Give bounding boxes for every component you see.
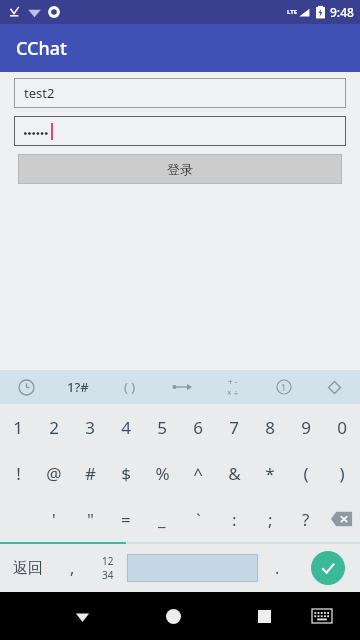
staticText: 8	[265, 416, 275, 439]
button[interactable]: Switch keyboard	[298, 592, 346, 640]
button[interactable]: '	[36, 496, 72, 542]
staticText: 3	[85, 416, 95, 439]
staticText: × ÷	[227, 387, 239, 398]
button[interactable]: 0	[324, 404, 360, 450]
staticText: *	[265, 462, 275, 485]
staticText: 6	[193, 416, 203, 439]
button[interactable]: 3	[72, 404, 108, 450]
staticText: 34	[102, 568, 114, 582]
staticText: ^	[193, 462, 203, 485]
staticText: @	[46, 462, 62, 485]
staticText: '	[52, 508, 56, 531]
button[interactable]: !	[0, 450, 36, 496]
staticText: 0	[337, 416, 347, 439]
staticText: 1	[281, 381, 287, 393]
staticText: CChat	[16, 36, 67, 61]
button[interactable]: ,	[55, 544, 89, 592]
staticText: &	[228, 462, 241, 485]
button[interactable]: Recent	[0, 370, 52, 404]
staticText: 7	[229, 416, 239, 439]
button[interactable]: #	[72, 450, 108, 496]
staticText: + -	[228, 376, 238, 387]
button[interactable]: _	[144, 496, 180, 542]
staticText: #	[85, 462, 96, 485]
staticText: ,	[70, 557, 75, 579]
staticText: 12	[102, 554, 114, 568]
button[interactable]: :	[216, 496, 252, 542]
button[interactable]: 12	[89, 544, 127, 592]
button[interactable]: Shape symbols	[309, 370, 360, 404]
staticText: 1	[13, 416, 23, 439]
button[interactable]: .	[258, 544, 296, 592]
button[interactable]	[14, 116, 346, 146]
staticText: 9:48	[330, 4, 354, 20]
staticText: .	[275, 557, 280, 579]
button[interactable]: 登录	[18, 154, 342, 184]
button[interactable]: (	[288, 450, 324, 496]
button[interactable]: 1?#	[52, 370, 104, 404]
staticText: 返回	[13, 559, 43, 578]
button[interactable]: "	[72, 496, 108, 542]
button[interactable]: $	[108, 450, 144, 496]
button[interactable]: Recents	[240, 592, 288, 640]
button[interactable]: )	[324, 450, 360, 496]
button[interactable]: 返回	[0, 544, 55, 592]
staticText: 4	[121, 416, 131, 439]
staticText: LTE	[287, 8, 298, 16]
button[interactable]: ;	[252, 496, 288, 542]
staticText: %	[155, 462, 170, 485]
button[interactable]: 8	[252, 404, 288, 450]
staticText: "	[87, 508, 94, 531]
staticText: (	[303, 462, 309, 485]
staticText: ;	[268, 508, 273, 531]
staticText: _	[158, 508, 166, 531]
button[interactable]: Back	[58, 592, 106, 640]
button[interactable]: test2	[14, 78, 346, 108]
staticText: =	[121, 508, 131, 531]
staticText: `	[196, 508, 201, 531]
staticText: ?	[302, 508, 310, 531]
button[interactable]: ( )	[104, 370, 156, 404]
button[interactable]: =	[108, 496, 144, 542]
staticText: ( )	[124, 378, 136, 396]
button[interactable]: 5	[144, 404, 180, 450]
button[interactable]: %	[144, 450, 180, 496]
button[interactable]: ?	[288, 496, 324, 542]
staticText: 2	[49, 416, 59, 439]
button[interactable]: Backspace	[324, 496, 360, 542]
button[interactable]: + -	[207, 370, 258, 404]
button[interactable]: 1	[0, 404, 36, 450]
button[interactable]: Arrow symbols	[156, 370, 207, 404]
button[interactable]: 6	[180, 404, 216, 450]
button[interactable]: Space	[127, 554, 258, 582]
button[interactable]: 4	[108, 404, 144, 450]
button[interactable]: Enter	[296, 544, 360, 592]
button[interactable]: *	[252, 450, 288, 496]
staticText: 1?#	[67, 378, 89, 396]
button[interactable]: Home	[149, 592, 197, 640]
button[interactable]: 7	[216, 404, 252, 450]
button[interactable]: 9	[288, 404, 324, 450]
staticText: !	[16, 462, 21, 485]
staticText: 9	[301, 416, 311, 439]
button[interactable]: &	[216, 450, 252, 496]
staticText: 5	[157, 416, 167, 439]
staticText: $	[121, 462, 131, 485]
button[interactable]: 2	[36, 404, 72, 450]
staticText: 登录	[167, 161, 193, 177]
staticText: test2	[24, 84, 55, 102]
button[interactable]: Numbered symbols	[258, 370, 309, 404]
button[interactable]: `	[180, 496, 216, 542]
staticText: :	[232, 508, 237, 531]
staticText: )	[339, 462, 345, 485]
button[interactable]: @	[36, 450, 72, 496]
button[interactable]: ^	[180, 450, 216, 496]
